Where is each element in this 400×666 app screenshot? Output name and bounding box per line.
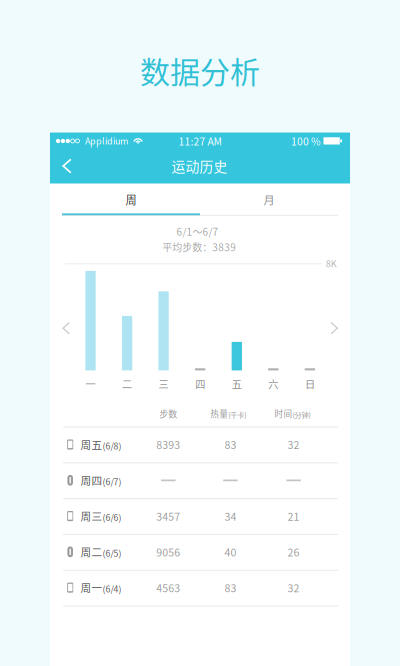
button[interactable]: Back — [51, 150, 83, 182]
staticText: 运动历史 — [171, 156, 227, 176]
staticText: 四 — [195, 376, 205, 391]
staticText: 26 — [288, 544, 300, 559]
staticText: 步数 — [159, 407, 177, 420]
button[interactable]: 周 — [62, 184, 200, 215]
staticText: 周 — [125, 191, 136, 208]
staticText: 一 — [85, 376, 95, 391]
staticText: 日 — [305, 376, 315, 391]
staticText: 6/1～6/7 — [176, 224, 218, 239]
staticText: 40 — [224, 544, 236, 559]
staticText: 83 — [224, 580, 236, 595]
staticText: Applidium — [85, 134, 128, 147]
staticText: 周一 — [81, 580, 103, 595]
staticText: (千卡) — [228, 409, 246, 420]
staticText: 34 — [224, 508, 236, 524]
staticText: 32 — [288, 580, 300, 595]
staticText: 周三 — [81, 508, 103, 523]
staticText: 数据分析 — [140, 48, 260, 92]
staticText: (6/7) — [103, 475, 122, 488]
staticText: 83 — [224, 437, 236, 452]
staticText: 9056 — [156, 544, 180, 559]
button[interactable]: 月 — [200, 184, 338, 215]
staticText: 8K — [326, 256, 337, 270]
button[interactable]: 周一 — [50, 570, 350, 605]
staticText: 六 — [268, 376, 278, 391]
staticText: 100 % — [291, 133, 321, 149]
staticText: 周二 — [81, 544, 103, 559]
button[interactable]: 周三 — [50, 498, 350, 534]
staticText: 时间 — [275, 407, 293, 420]
staticText: 周四 — [81, 472, 103, 488]
staticText: 五 — [232, 376, 242, 391]
button[interactable]: 周二 — [50, 534, 350, 570]
staticText: 21 — [288, 508, 300, 524]
button[interactable]: Next week — [321, 315, 347, 341]
staticText: 8393 — [156, 437, 180, 452]
staticText: 11:27 AM — [178, 133, 221, 148]
button[interactable]: 周五 — [50, 427, 350, 462]
staticText: (分钟) — [293, 409, 311, 420]
staticText: 月 — [263, 191, 274, 208]
staticText: 32 — [288, 437, 300, 452]
staticText: (6/4) — [103, 582, 122, 595]
staticText: 周五 — [81, 437, 103, 452]
button[interactable]: 周四 — [50, 462, 350, 498]
button[interactable]: Previous week — [53, 315, 79, 341]
staticText: 热量 — [210, 407, 228, 420]
staticText: (6/8) — [103, 439, 122, 452]
staticText: 3457 — [156, 508, 180, 524]
staticText: (6/6) — [103, 511, 122, 523]
staticText: (6/5) — [103, 547, 122, 559]
staticText: 平均步数：3839 — [162, 240, 236, 254]
staticText: 三 — [159, 376, 169, 391]
staticText: 二 — [122, 376, 132, 391]
staticText: 4563 — [156, 580, 180, 595]
